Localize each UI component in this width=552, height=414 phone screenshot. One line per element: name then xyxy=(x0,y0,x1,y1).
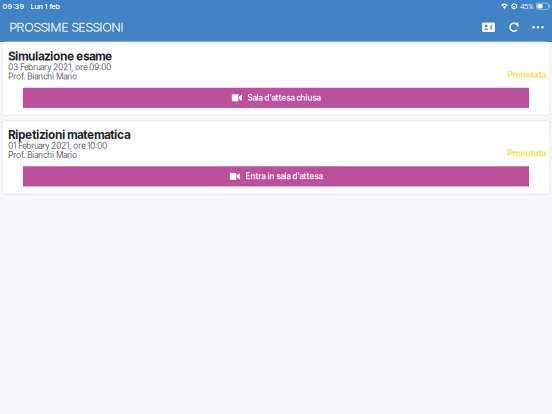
button[interactable]: Sala d'attesa chiusa xyxy=(23,88,529,108)
staticText: PROSSIME SESSIONI xyxy=(9,20,123,35)
staticText: Prenotata xyxy=(507,69,546,80)
staticText: Lun 1 feb xyxy=(31,2,60,11)
staticText: Prof. Bianchi Mario xyxy=(8,71,77,82)
staticText: 03 February 2021, ore 09:00 xyxy=(8,62,111,72)
button[interactable]: Altro xyxy=(526,12,549,42)
staticText: Ripetizioni matematica xyxy=(8,128,130,142)
staticText: Prenotata xyxy=(507,148,546,158)
staticText: 09:39 xyxy=(3,2,25,11)
staticText: Entra in sala d'attesa xyxy=(245,171,322,181)
staticText: Simulazione esame xyxy=(8,49,112,63)
button[interactable]: Aggiorna xyxy=(501,12,526,42)
staticText: 01 February 2021, ore 10:00 xyxy=(8,141,107,151)
staticText: Prof. Bianchi Mario xyxy=(8,150,77,160)
button[interactable]: Entra in sala d'attesa xyxy=(23,166,529,186)
staticText: Sala d'attesa chiusa xyxy=(247,93,320,103)
button[interactable]: Contatti xyxy=(475,12,501,42)
staticText: 45% xyxy=(520,2,534,11)
